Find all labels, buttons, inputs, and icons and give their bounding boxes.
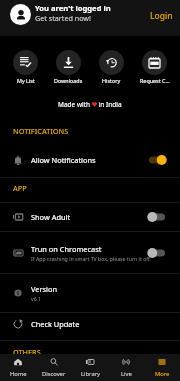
button[interactable]: Downloads — [47, 50, 90, 84]
staticText: Get started now! — [35, 13, 91, 23]
staticText: Show Adult — [31, 212, 71, 222]
staticText: Login — [150, 10, 173, 22]
staticText: Allow Notifications — [31, 155, 96, 165]
staticText: More — [155, 370, 170, 378]
button[interactable]: Allow Notifications — [0, 142, 180, 177]
button[interactable]: Library — [72, 354, 108, 381]
button[interactable]: Discover — [36, 354, 72, 381]
staticText: Check Update — [31, 319, 80, 329]
staticText: Version — [31, 284, 57, 294]
staticText: Trun on Chromecast — [31, 244, 102, 254]
button[interactable]: Check Update — [0, 313, 180, 335]
staticText: OTHERS — [13, 347, 41, 357]
staticText: Request C... — [140, 77, 170, 84]
button[interactable]: Live — [108, 354, 144, 381]
button[interactable]: Trun on Chromecast — [0, 232, 180, 273]
staticText: Made with — [58, 100, 92, 109]
staticText: NOTIFICATIONS — [13, 126, 69, 136]
staticText: If App crashing in smart TV box, please … — [31, 255, 149, 262]
staticText: Home — [10, 370, 27, 378]
staticText: Library — [81, 370, 100, 378]
button[interactable]: Toggle off — [149, 212, 165, 222]
button[interactable]: Toggle on — [149, 155, 165, 165]
button[interactable]: Home — [0, 354, 36, 381]
staticText: You aren't logged in — [35, 3, 111, 13]
staticText: APP — [13, 183, 27, 193]
button[interactable]: Version — [0, 274, 180, 312]
button[interactable]: Login — [147, 6, 176, 26]
staticText: v6.1 — [31, 295, 41, 302]
button[interactable]: More — [144, 354, 180, 381]
staticText: Discover — [42, 370, 66, 378]
button[interactable]: Show Adult — [0, 203, 180, 231]
staticText: in India — [97, 100, 122, 109]
button[interactable]: History — [90, 50, 133, 84]
staticText: Live — [121, 370, 132, 378]
button[interactable]: Toggle off — [149, 248, 165, 258]
button[interactable]: My List — [4, 50, 47, 84]
staticText: My List — [17, 77, 35, 84]
staticText: History — [102, 77, 121, 84]
button[interactable]: Request C... — [133, 50, 176, 84]
staticText: Downloads — [54, 77, 83, 84]
